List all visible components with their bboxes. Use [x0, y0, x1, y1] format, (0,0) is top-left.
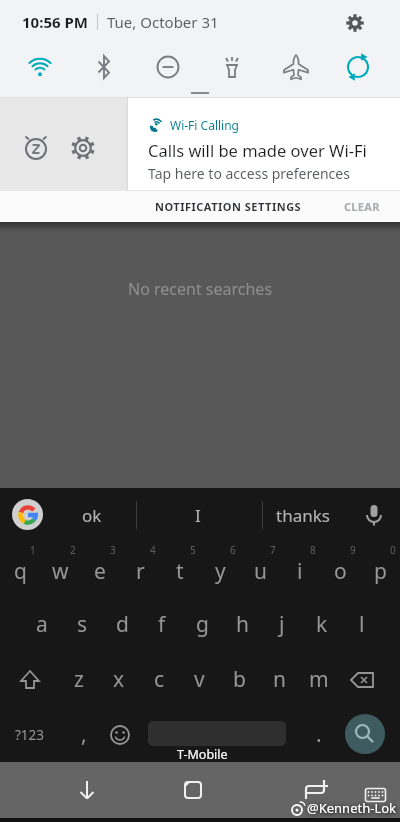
staticText: d: [116, 610, 129, 639]
button[interactable]: s: [62, 597, 102, 652]
staticText: ,: [81, 720, 87, 749]
button[interactable]: ok: [56, 488, 128, 542]
button[interactable]: 0: [360, 542, 400, 597]
button[interactable]: m: [299, 652, 339, 707]
button[interactable]: NOTIFICATION SETTINGS: [155, 190, 302, 222]
button[interactable]: z: [59, 652, 99, 707]
button[interactable]: j: [262, 597, 302, 652]
staticText: 10:56 PM: [22, 12, 88, 32]
button[interactable]: [293, 766, 341, 814]
staticText: f: [158, 610, 166, 639]
staticText: p: [374, 557, 387, 586]
button[interactable]: c: [139, 652, 179, 707]
staticText: 8: [310, 543, 316, 557]
staticText: w: [52, 557, 69, 586]
button[interactable]: [103, 707, 137, 762]
staticText: c: [154, 665, 165, 694]
staticText: No recent searches: [128, 278, 273, 300]
button[interactable]: [22, 134, 50, 162]
button[interactable]: ,: [66, 707, 102, 762]
staticText: thanks: [276, 504, 330, 527]
staticText: q: [14, 557, 27, 586]
button[interactable]: d: [102, 597, 142, 652]
button[interactable]: 8: [280, 542, 320, 597]
staticText: NOTIFICATION SETTINGS: [155, 199, 302, 214]
staticText: 1: [30, 543, 36, 557]
staticText: u: [254, 557, 267, 586]
staticText: 6: [230, 543, 236, 557]
button[interactable]: [210, 45, 254, 89]
button[interactable]: 3: [80, 542, 120, 597]
staticText: 9: [350, 543, 356, 557]
button[interactable]: l: [342, 597, 382, 652]
staticText: m: [309, 665, 329, 694]
button[interactable]: x: [99, 652, 139, 707]
button[interactable]: .: [302, 707, 336, 762]
staticText: x: [113, 665, 125, 694]
button[interactable]: n: [259, 652, 299, 707]
button[interactable]: b: [219, 652, 259, 707]
button[interactable]: [336, 45, 380, 89]
staticText: Tap here to access preferences: [148, 164, 350, 183]
button[interactable]: [274, 45, 318, 89]
button[interactable]: 9: [320, 542, 360, 597]
button[interactable]: 4: [120, 542, 160, 597]
button[interactable]: [63, 766, 111, 814]
staticText: g: [196, 610, 209, 639]
button[interactable]: [12, 499, 43, 530]
staticText: z: [74, 665, 84, 694]
staticText: 3: [110, 543, 116, 557]
button[interactable]: k: [302, 597, 342, 652]
staticText: s: [77, 610, 88, 639]
button[interactable]: [344, 12, 366, 34]
button[interactable]: [358, 499, 390, 531]
staticText: Calls will be made over Wi-Fi: [148, 139, 367, 161]
staticText: y: [215, 557, 226, 586]
staticText: 0: [390, 543, 396, 557]
button[interactable]: 2: [40, 542, 80, 597]
button[interactable]: [18, 45, 62, 89]
button[interactable]: 1: [0, 542, 40, 597]
button[interactable]: v: [179, 652, 219, 707]
button[interactable]: CLEAR: [344, 199, 380, 214]
staticText: 5: [190, 543, 196, 557]
button[interactable]: Wi-Fi Calling: [128, 98, 400, 190]
button[interactable]: h: [222, 597, 262, 652]
button[interactable]: 5: [160, 542, 200, 597]
button[interactable]: 7: [240, 542, 280, 597]
button[interactable]: [339, 652, 384, 707]
staticText: j: [279, 610, 285, 639]
button[interactable]: [345, 714, 385, 754]
staticText: k: [316, 610, 328, 639]
staticText: v: [194, 665, 205, 694]
staticText: n: [273, 665, 286, 694]
staticText: @Kenneth-Lok: [307, 799, 396, 817]
staticText: e: [94, 557, 106, 586]
staticText: T-Mobile: [177, 746, 228, 763]
button[interactable]: [82, 45, 126, 89]
staticText: i: [297, 557, 303, 586]
button[interactable]: [0, 652, 59, 707]
button[interactable]: ?123: [6, 707, 54, 762]
button[interactable]: g: [182, 597, 222, 652]
button[interactable]: a: [22, 597, 62, 652]
button[interactable]: [146, 45, 190, 89]
staticText: h: [236, 610, 249, 639]
button[interactable]: [357, 780, 393, 810]
button[interactable]: thanks: [266, 488, 340, 542]
button[interactable]: [169, 766, 217, 814]
staticText: r: [136, 557, 145, 586]
staticText: o: [334, 557, 347, 586]
button[interactable]: 6: [200, 542, 240, 597]
staticText: ?123: [15, 726, 45, 744]
staticText: 7: [270, 543, 276, 557]
staticText: I: [195, 504, 201, 527]
button[interactable]: [70, 135, 96, 161]
button[interactable]: f: [142, 597, 182, 652]
button[interactable]: I: [160, 488, 236, 542]
staticText: Tue, October 31: [107, 12, 219, 32]
staticText: ok: [82, 504, 102, 527]
staticText: CLEAR: [344, 199, 380, 214]
staticText: t: [176, 557, 184, 586]
